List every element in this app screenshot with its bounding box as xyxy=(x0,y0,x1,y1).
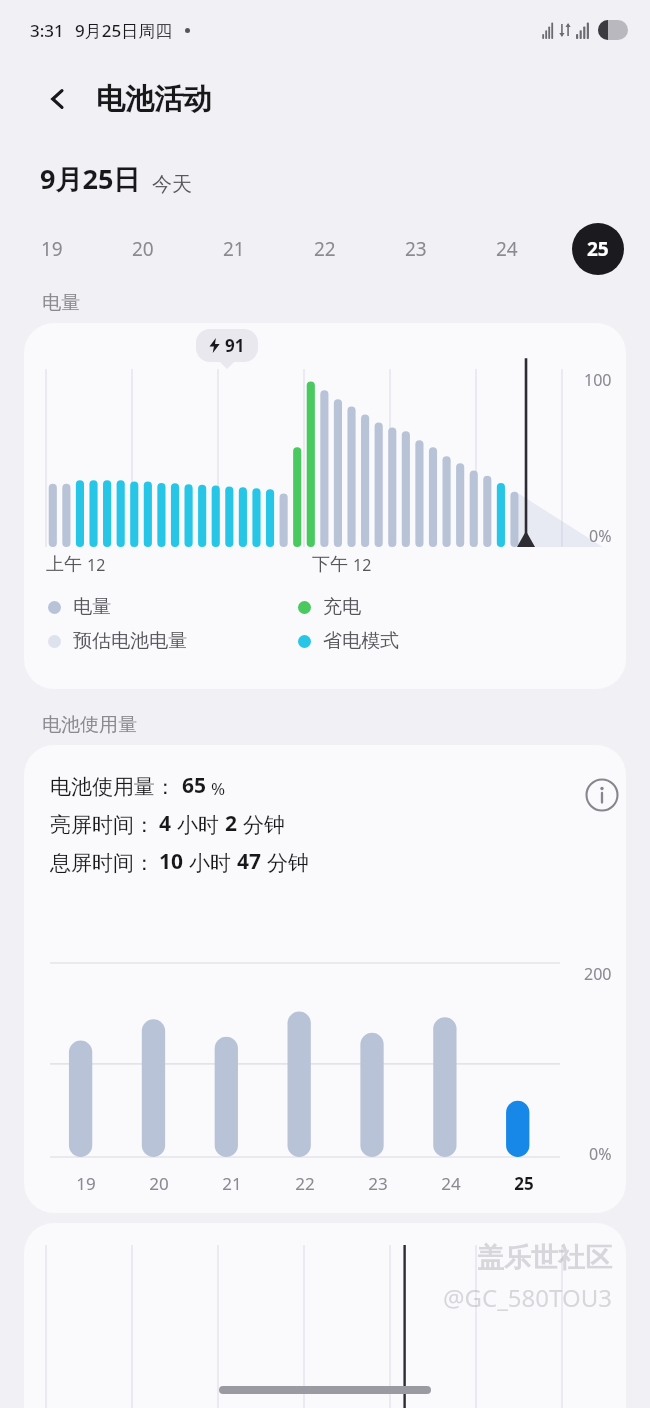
staticText: 21 xyxy=(223,236,245,262)
button[interactable]: 21 xyxy=(208,223,260,275)
staticText: 下午 xyxy=(312,553,348,576)
staticText: 分钟 xyxy=(267,850,309,876)
staticText: 小时 xyxy=(189,850,231,876)
staticText: 今天 xyxy=(152,172,192,197)
button[interactable]: 19 xyxy=(26,223,78,275)
button[interactable]: 20 xyxy=(117,223,169,275)
button[interactable]: 返回 xyxy=(34,75,82,123)
staticText: 亮屏时间： xyxy=(50,812,155,838)
staticText: 19 xyxy=(76,1172,96,1195)
staticText: 电池活动 xyxy=(96,81,212,118)
staticText: 12 xyxy=(87,554,106,576)
staticText: 小时 xyxy=(177,812,219,838)
staticText: 25 xyxy=(587,236,609,262)
staticText: 10 xyxy=(159,847,184,876)
staticText: 22 xyxy=(314,236,336,262)
staticText: 23 xyxy=(405,236,427,262)
staticText: % xyxy=(211,777,226,800)
staticText: 4 xyxy=(159,809,172,838)
staticText: 盖乐世社区 xyxy=(477,1241,612,1275)
staticText: 91 xyxy=(225,334,245,357)
button[interactable]: 25 xyxy=(572,223,624,275)
button[interactable]: 24 xyxy=(481,223,533,275)
staticText: 24 xyxy=(496,236,518,262)
staticText: 20 xyxy=(132,236,154,262)
staticText: 电量 xyxy=(42,291,80,315)
staticText: 分钟 xyxy=(243,812,285,838)
staticText: 3:31 xyxy=(30,19,64,42)
staticText: 上午 xyxy=(46,553,82,576)
button[interactable]: 23 xyxy=(390,223,442,275)
staticText: 电池使用量 xyxy=(42,713,137,737)
staticText: 电量 xyxy=(73,595,111,619)
staticText: 21 xyxy=(222,1172,242,1195)
staticText: 9月25日周四 xyxy=(75,19,173,42)
button[interactable]: 电池使用量： xyxy=(24,745,626,1213)
staticText: 19 xyxy=(41,236,63,262)
staticText: 2 xyxy=(225,809,238,838)
staticText: 息屏时间： xyxy=(50,850,155,876)
staticText: 9月25日 xyxy=(40,160,141,197)
button[interactable]: 91 xyxy=(24,323,626,689)
staticText: 23 xyxy=(368,1172,388,1195)
staticText: 24 xyxy=(441,1172,461,1195)
staticText: 25 xyxy=(514,1172,534,1195)
staticText: @GC_580TOU3 xyxy=(443,1281,612,1314)
staticText: 20 xyxy=(149,1172,169,1195)
staticText: 22 xyxy=(295,1172,315,1195)
staticText: 47 xyxy=(237,847,262,876)
staticText: 200 xyxy=(584,963,612,985)
staticText: 省电模式 xyxy=(323,629,399,653)
staticText: 100 xyxy=(584,369,612,391)
staticText: 65 xyxy=(182,771,207,800)
staticText: 0% xyxy=(589,1143,612,1165)
button[interactable]: 22 xyxy=(299,223,351,275)
staticText: 0% xyxy=(589,525,612,547)
staticText: 预估电池电量 xyxy=(73,629,187,653)
staticText: 12 xyxy=(353,554,372,576)
button[interactable]: 信息 xyxy=(578,771,626,819)
staticText: 充电 xyxy=(323,595,361,619)
staticText: 电池使用量： xyxy=(50,774,176,800)
button[interactable]: 盖乐世社区 xyxy=(24,1223,626,1408)
